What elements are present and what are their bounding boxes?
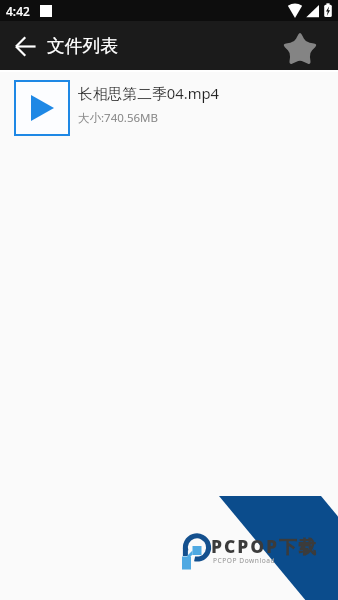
button[interactable]: 长相思第二季04.mp4 [0,72,338,149]
button[interactable]: Back [9,30,41,62]
staticText: 大小:740.56MB [78,110,158,126]
button[interactable]: Favorite [280,26,320,66]
staticText: 文件列表 [47,35,119,57]
staticText: PCPOP Download [213,556,276,565]
staticText: 4:42 [6,3,30,19]
staticText: PCPOP下载 [211,534,318,558]
staticText: 长相思第二季04.mp4 [78,83,220,103]
